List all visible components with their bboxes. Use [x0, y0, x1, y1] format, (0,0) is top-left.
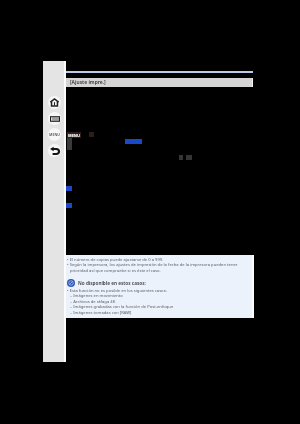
- staticText: MENU: [68, 133, 80, 138]
- button[interactable]: Home: [48, 96, 61, 109]
- staticText: MENU: [49, 132, 61, 137]
- staticText: • El número de copias puede ajustarse de…: [67, 257, 164, 263]
- staticText: – Imágenes en movimiento: [70, 293, 123, 299]
- staticText: • Según la impresora, los ajustes de imp…: [67, 262, 238, 268]
- staticText: prioridad así que compruebe si es éste e…: [70, 268, 161, 274]
- button[interactable]: Back: [48, 144, 61, 157]
- button[interactable]: Display: [48, 112, 61, 125]
- staticText: • Esta función no es posible en los sigu…: [67, 288, 167, 294]
- staticText: – Archivos de ráfaga 4K: [70, 299, 116, 305]
- staticText: [Ajuste impre.]: [70, 79, 106, 86]
- staticText: – Imágenes grabadas con la función de Po…: [70, 304, 174, 310]
- staticText: – Imágenes tomadas con [RAW]: [70, 310, 132, 316]
- button[interactable]: Menu: [48, 128, 61, 141]
- staticText: No disponible en estos casos:: [78, 280, 146, 286]
